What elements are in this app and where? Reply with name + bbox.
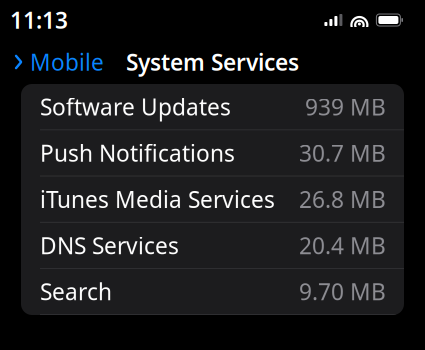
staticText: 9.70 MB [299, 276, 386, 307]
staticText: 26.8 MB [299, 184, 386, 214]
staticText: Mobile [30, 47, 104, 77]
staticText: 20.4 MB [299, 230, 386, 260]
button[interactable]: Search [21, 269, 404, 315]
button[interactable]: iTunes Media Services [21, 176, 404, 223]
button[interactable]: Push Notifications [21, 130, 404, 176]
button[interactable]: Mobile [0, 41, 104, 83]
staticText: Push Notifications [40, 138, 235, 168]
button[interactable]: Software Updates [21, 84, 404, 130]
staticText: Search [40, 276, 112, 307]
staticText: 939 MB [305, 92, 386, 122]
staticText: System Services [126, 47, 299, 77]
staticText: 30.7 MB [299, 138, 386, 168]
staticText: DNS Services [40, 230, 179, 260]
button[interactable]: DNS Services [21, 223, 404, 269]
staticText: 11:13 [10, 5, 68, 35]
staticText: Software Updates [40, 92, 231, 122]
staticText: iTunes Media Services [40, 184, 275, 214]
